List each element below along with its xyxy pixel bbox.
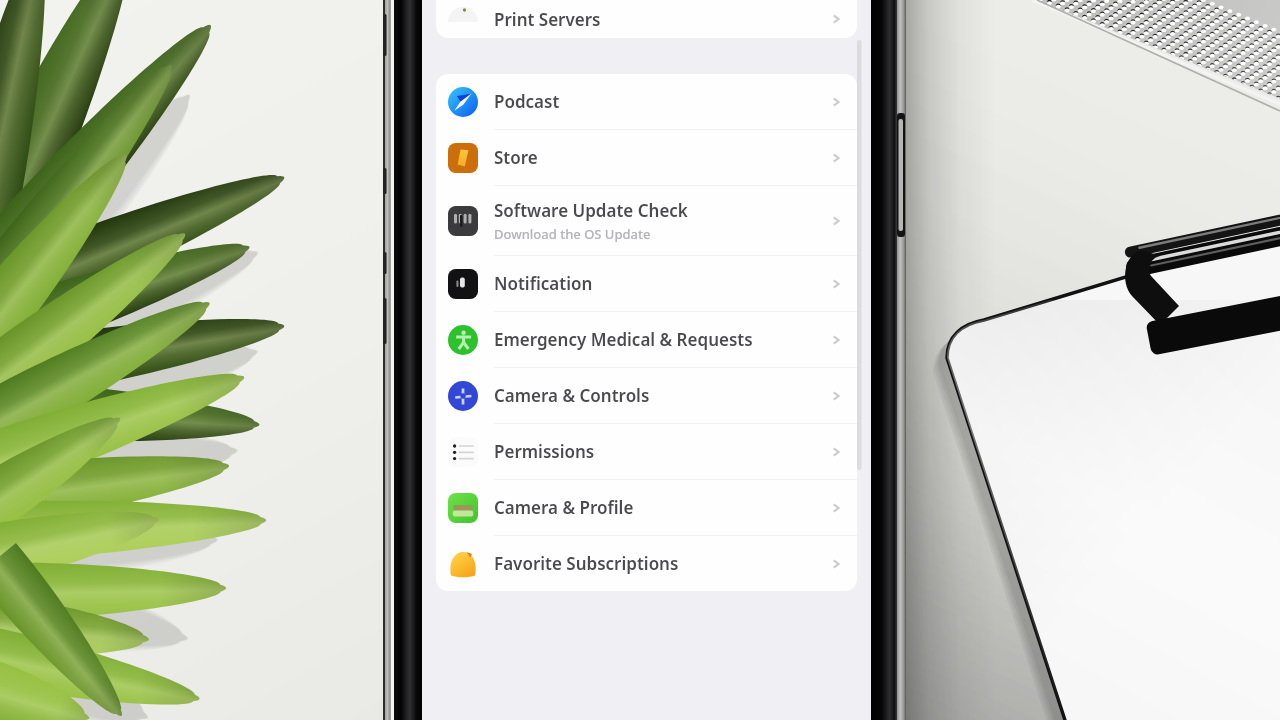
button[interactable]: Camera and controls	[436, 368, 857, 423]
button[interactable]: Notification	[436, 256, 857, 311]
other: Notification	[448, 269, 478, 299]
button[interactable]: Print Servers	[436, 0, 857, 38]
staticText: Software Update Check	[494, 199, 688, 222]
other: Camera and controls	[448, 381, 478, 411]
staticText: Permissions	[494, 440, 595, 463]
staticText: Print Servers	[494, 8, 829, 31]
other: Store	[448, 143, 478, 173]
staticText: Store	[494, 146, 538, 169]
staticText: Emergency Medical & Requests	[494, 328, 753, 351]
staticText: Download the OS Update	[494, 225, 651, 243]
other: Podcast	[448, 87, 478, 117]
button[interactable]: Camera and profile	[436, 480, 857, 535]
button[interactable]: Permissions	[436, 424, 857, 479]
staticText: Favorite Subscriptions	[494, 552, 679, 575]
button[interactable]: Podcast	[436, 74, 857, 129]
other: Camera and profile	[448, 493, 478, 523]
other: Emergency	[448, 325, 478, 355]
other: Favorite subscriptions	[448, 549, 478, 579]
button[interactable]: Favorite subscriptions	[436, 536, 857, 591]
button[interactable]: Emergency	[436, 312, 857, 367]
button[interactable]: Store	[436, 130, 857, 185]
staticText: Camera & Controls	[494, 384, 650, 407]
button[interactable]: Software Update	[436, 186, 857, 255]
staticText: Notification	[494, 272, 593, 295]
other: Permissions	[448, 437, 478, 467]
staticText: Podcast	[494, 90, 560, 113]
staticText: Camera & Profile	[494, 496, 634, 519]
other: Software Update	[448, 206, 478, 236]
